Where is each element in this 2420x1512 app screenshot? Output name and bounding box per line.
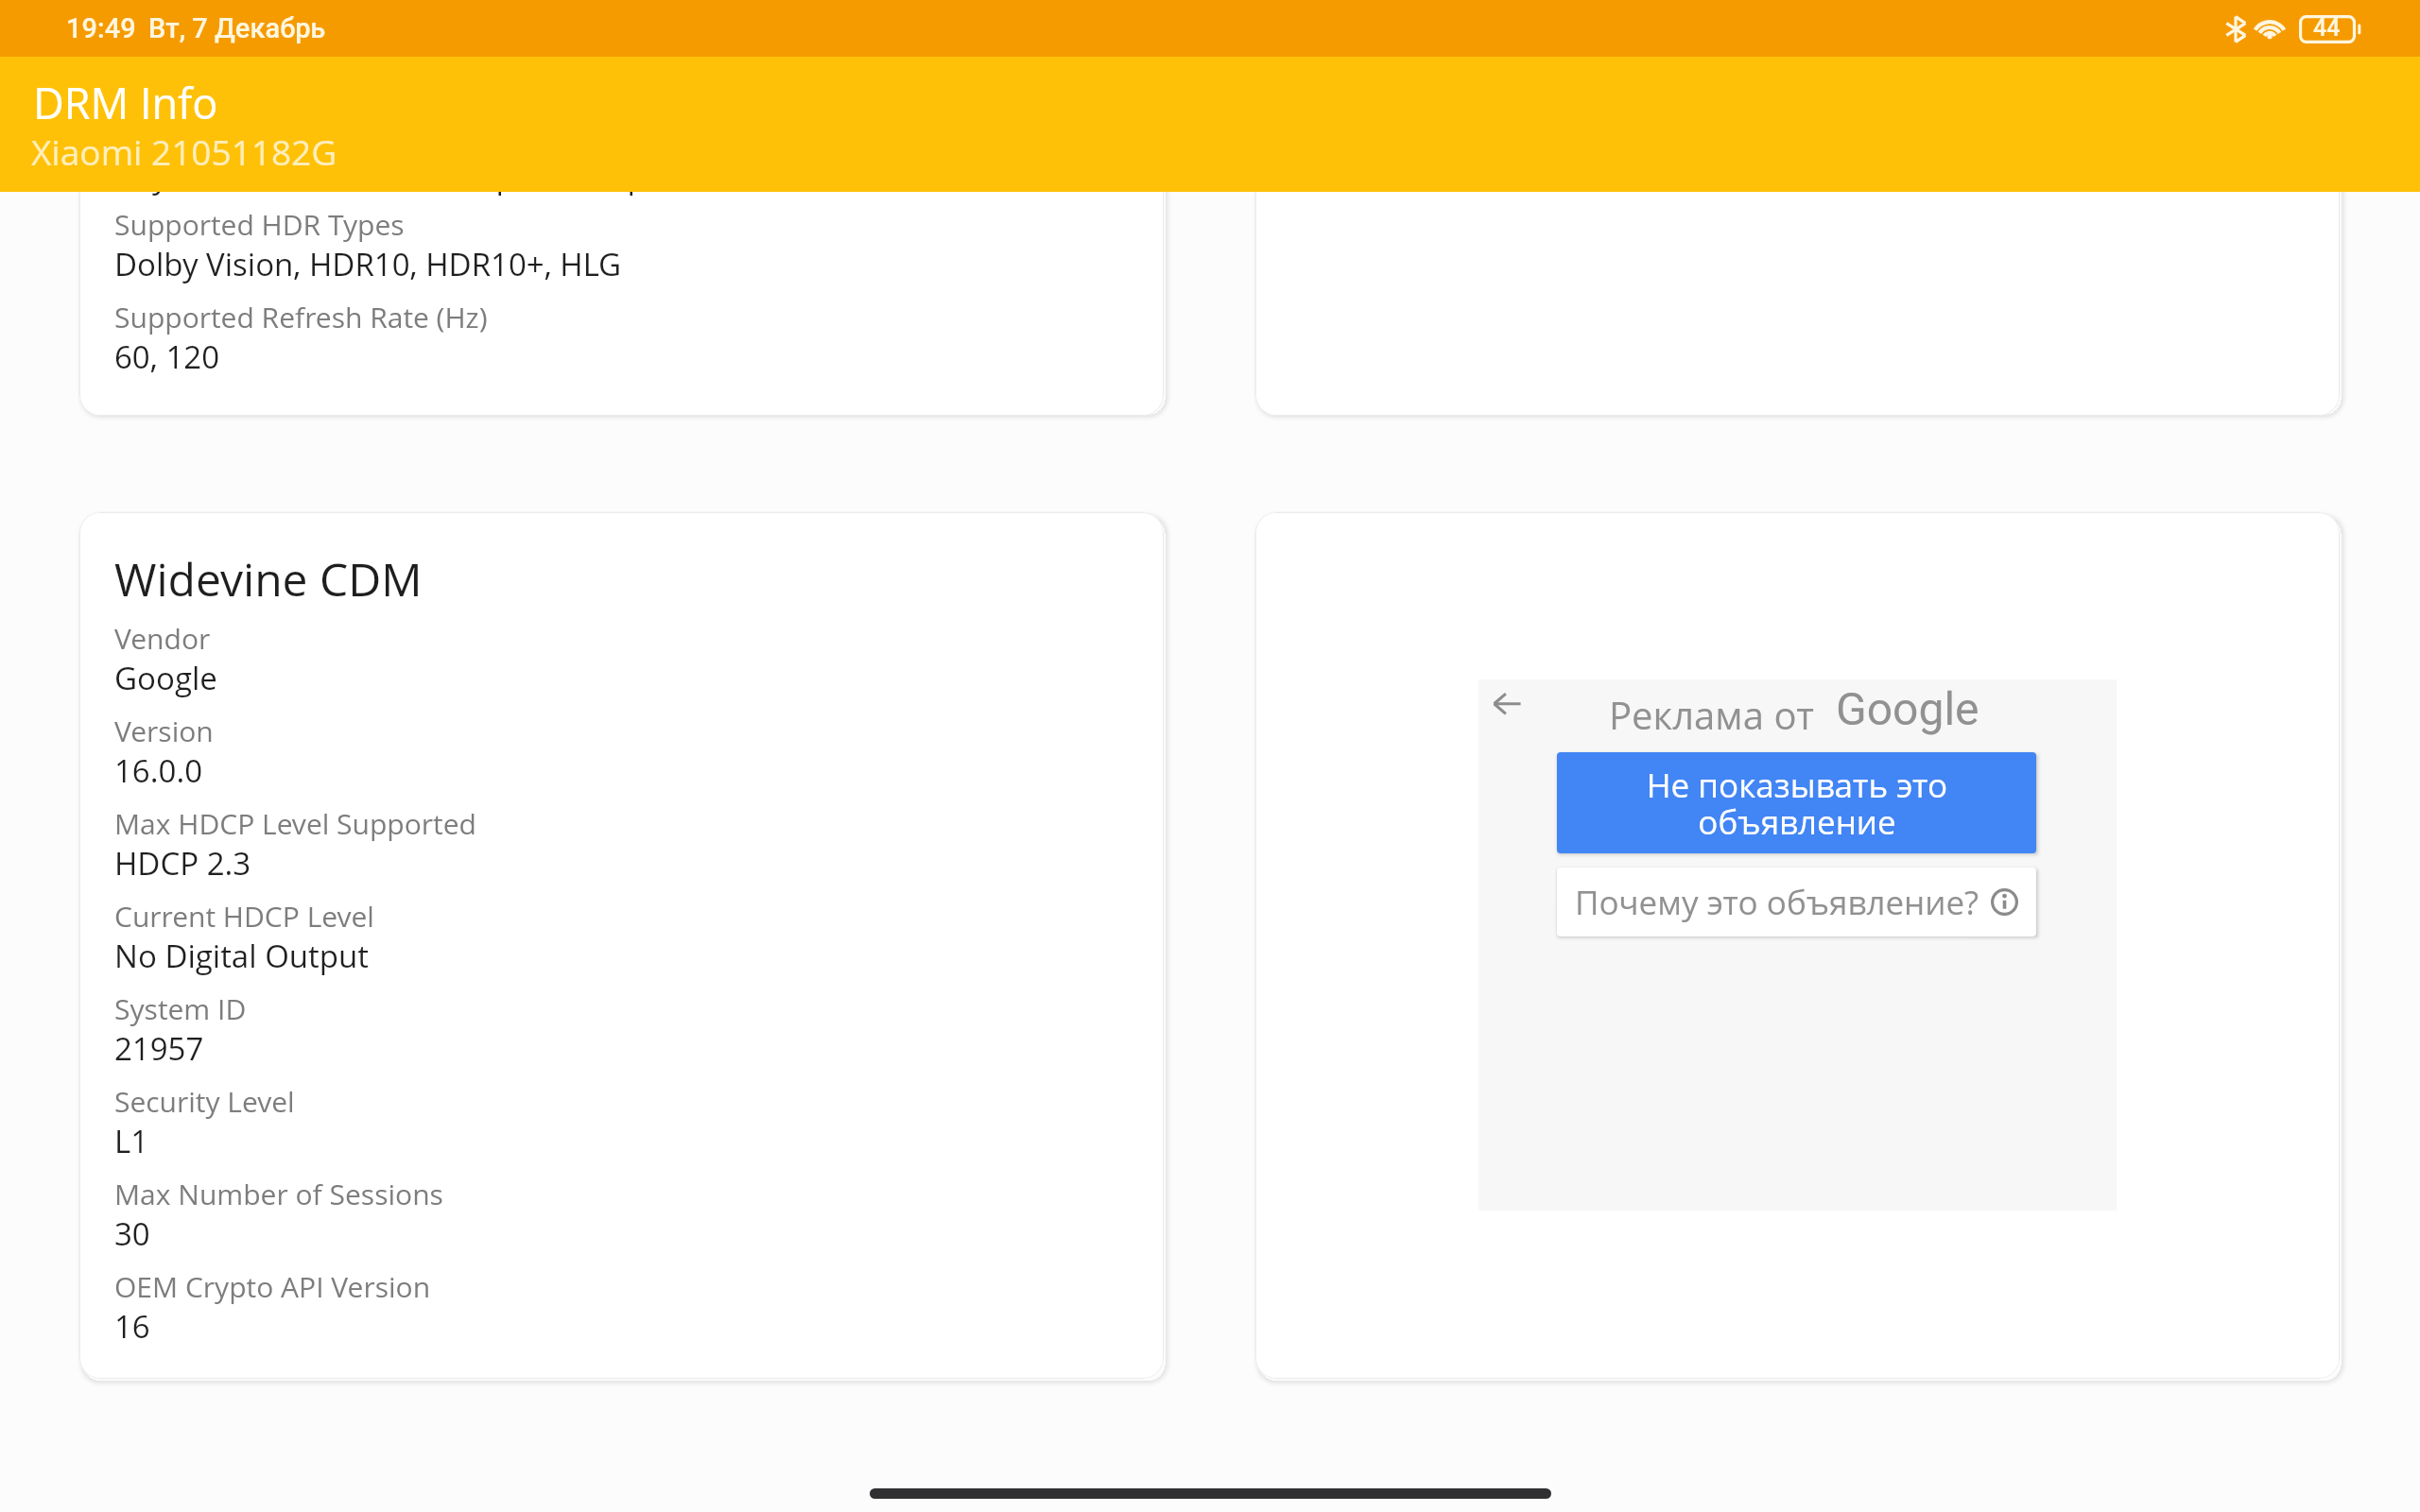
staticText: Vendor — [114, 619, 2194, 658]
staticText: No Digital Output — [114, 935, 2194, 977]
staticText: 44 — [2313, 14, 2370, 42]
staticText: 16 — [114, 1305, 2194, 1348]
button[interactable]: Почему это объявление? — [1557, 868, 2036, 936]
staticText: DRM Info — [33, 74, 2113, 131]
button[interactable] — [79, 512, 1164, 1379]
staticText: Max HDCP Level Supported — [114, 804, 2194, 843]
staticText: Widevine CDM — [114, 548, 2194, 610]
staticText: OEM Crypto API Version — [114, 1267, 2194, 1306]
staticText: Supported HDR Types — [114, 205, 2194, 244]
button[interactable] — [1255, 512, 2340, 1379]
button[interactable] — [1255, 142, 2340, 416]
staticText: 16.0.0 — [114, 749, 2194, 792]
staticText: Physical Size: 1080 x 2400 px, 395 dpi, … — [114, 155, 2194, 198]
staticText: Version — [114, 712, 2194, 750]
staticText: L1 — [114, 1120, 2194, 1162]
staticText: HDCP 2.3 — [114, 842, 2194, 885]
staticText: Max Number of Sessions — [114, 1175, 2194, 1213]
staticText: Google — [1836, 682, 2420, 735]
button[interactable] — [79, 142, 1164, 416]
staticText: Вт, 7 Декабрь — [148, 12, 2228, 44]
staticText: Реклама от — [1609, 689, 2247, 740]
staticText: Xiaomi 21051182G — [31, 128, 2111, 175]
staticText: Current HDCP Level — [114, 897, 2194, 936]
staticText: Не показывать это объявление — [1599, 763, 1996, 844]
staticText: 60, 120 — [114, 335, 2194, 378]
staticText: Dolby Vision, HDR10, HDR10+, HLG — [114, 243, 2194, 285]
button[interactable]: Не показывать это объявление — [1557, 752, 2036, 853]
staticText: Supported Refresh Rate (Hz) — [114, 298, 2194, 336]
button[interactable]: Back — [1480, 679, 1533, 732]
staticText: System ID — [114, 989, 2194, 1028]
staticText: 21957 — [114, 1027, 2194, 1070]
staticText: Почему это объявление? — [1575, 880, 1979, 925]
staticText: 19:49 — [66, 12, 2146, 44]
staticText: 30 — [114, 1212, 2194, 1255]
staticText: Security Level — [114, 1082, 2194, 1121]
staticText: Google — [114, 657, 2194, 699]
